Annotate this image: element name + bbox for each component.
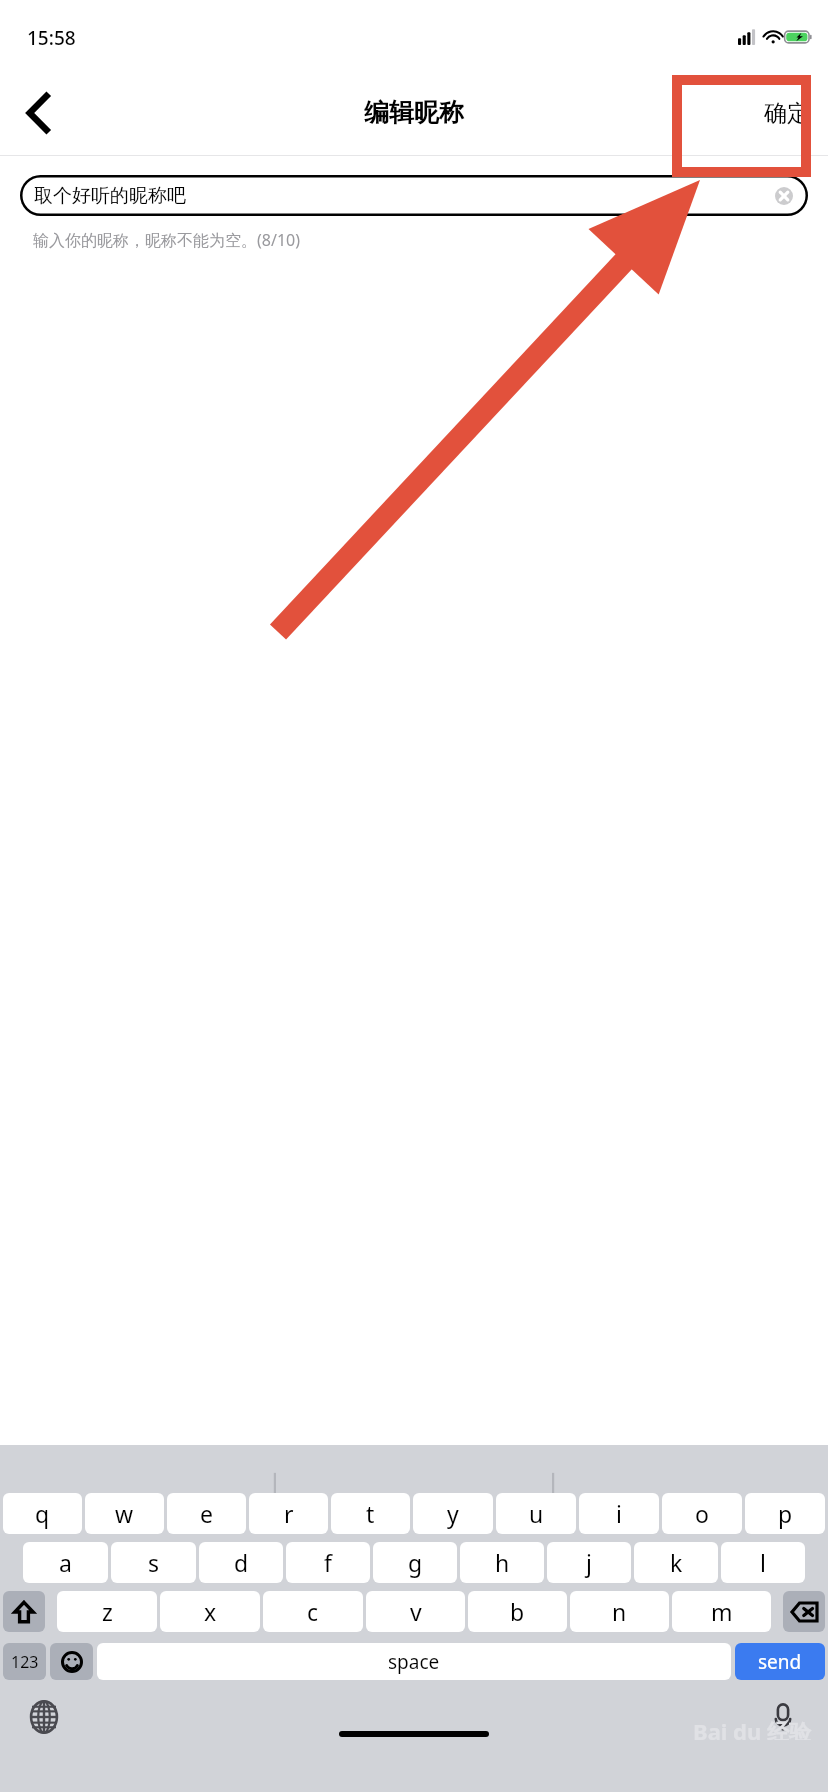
- button[interactable]: r: [249, 1493, 328, 1534]
- button[interactable]: o: [662, 1493, 742, 1534]
- button[interactable]: h: [460, 1542, 544, 1583]
- button[interactable]: t: [331, 1493, 410, 1534]
- staticText: s: [148, 1547, 160, 1578]
- button[interactable]: w: [85, 1493, 164, 1534]
- button[interactable]: f: [286, 1542, 370, 1583]
- staticText: 取个好听的昵称吧: [34, 184, 186, 208]
- staticText: f: [324, 1547, 332, 1578]
- button[interactable]: Voice input: [768, 1702, 798, 1732]
- button[interactable]: 123: [3, 1643, 46, 1680]
- staticText: q: [35, 1498, 50, 1529]
- staticText: h: [495, 1547, 510, 1578]
- staticText: y: [447, 1498, 459, 1529]
- staticText: z: [102, 1596, 113, 1627]
- staticText: 编辑昵称: [364, 97, 464, 128]
- staticText: space: [388, 1649, 440, 1675]
- button[interactable]: n: [570, 1591, 669, 1632]
- button[interactable]: Back: [0, 70, 76, 155]
- button[interactable]: a: [23, 1542, 108, 1583]
- button[interactable]: c: [263, 1591, 363, 1632]
- button[interactable]: q: [3, 1493, 82, 1534]
- button[interactable]: i: [579, 1493, 659, 1534]
- button[interactable]: 取个好听的昵称吧: [20, 175, 808, 216]
- staticText: 输入你的昵称，昵称不能为空。(8/10): [33, 229, 301, 251]
- staticText: c: [307, 1596, 319, 1627]
- button[interactable]: z: [57, 1591, 157, 1632]
- button[interactable]: v: [366, 1591, 465, 1632]
- staticText: 15:58: [27, 25, 76, 51]
- staticText: k: [670, 1547, 683, 1578]
- staticText: Bai du 经验: [693, 1716, 812, 1740]
- staticText: u: [529, 1498, 544, 1529]
- staticText: a: [59, 1547, 72, 1578]
- staticText: b: [510, 1596, 525, 1627]
- staticText: x: [204, 1596, 217, 1627]
- button[interactable]: l: [721, 1542, 805, 1583]
- staticText: l: [760, 1547, 766, 1578]
- button[interactable]: s: [111, 1542, 196, 1583]
- button[interactable]: d: [199, 1542, 283, 1583]
- button[interactable]: u: [496, 1493, 576, 1534]
- staticText: send: [758, 1649, 802, 1675]
- staticText: v: [410, 1596, 422, 1627]
- staticText: p: [778, 1498, 793, 1529]
- button[interactable]: space: [97, 1643, 731, 1680]
- button[interactable]: 确定: [758, 90, 816, 136]
- button[interactable]: Shift: [3, 1591, 45, 1632]
- staticText: d: [234, 1547, 249, 1578]
- staticText: m: [711, 1596, 733, 1627]
- button[interactable]: Backspace: [783, 1591, 825, 1632]
- button[interactable]: Emoji: [50, 1643, 93, 1680]
- button[interactable]: y: [413, 1493, 493, 1534]
- button[interactable]: x: [160, 1591, 260, 1632]
- staticText: e: [200, 1498, 213, 1529]
- button[interactable]: b: [468, 1591, 567, 1632]
- staticText: r: [284, 1498, 294, 1529]
- button[interactable]: j: [547, 1542, 631, 1583]
- staticText: n: [612, 1596, 627, 1627]
- button[interactable]: e: [167, 1493, 246, 1534]
- staticText: i: [616, 1498, 622, 1529]
- staticText: t: [366, 1498, 375, 1529]
- button[interactable]: send: [735, 1643, 825, 1680]
- staticText: w: [115, 1498, 134, 1529]
- button[interactable]: Change keyboard language: [27, 1700, 61, 1734]
- button[interactable]: Clear text: [775, 187, 793, 205]
- button[interactable]: p: [745, 1493, 825, 1534]
- staticText: o: [695, 1498, 709, 1529]
- button[interactable]: m: [672, 1591, 771, 1632]
- staticText: j: [586, 1547, 592, 1578]
- staticText: g: [408, 1547, 423, 1578]
- staticText: 确定: [764, 99, 810, 128]
- button[interactable]: k: [634, 1542, 718, 1583]
- button[interactable]: g: [373, 1542, 457, 1583]
- staticText: 123: [11, 1651, 39, 1673]
